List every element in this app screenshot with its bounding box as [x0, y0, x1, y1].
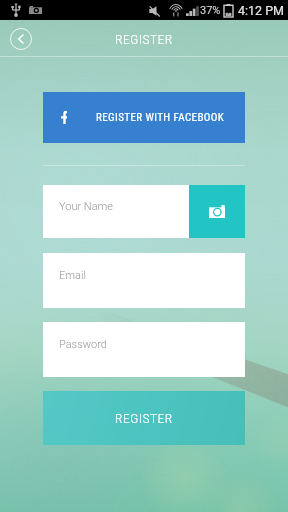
staticText: REGISTER	[115, 410, 173, 426]
button[interactable]: Back	[10, 28, 32, 50]
staticText: Password	[59, 338, 107, 351]
button[interactable]: Your Name	[43, 185, 189, 238]
button[interactable]: Password	[43, 322, 245, 377]
button[interactable]: REGISTER	[43, 391, 245, 445]
button[interactable]: Take photo	[189, 185, 245, 238]
button[interactable]: REGISTER WITH FACEBOOK	[43, 92, 245, 143]
staticText: Email	[59, 269, 86, 282]
staticText: 4:12 PM	[238, 3, 285, 18]
staticText: 37%	[200, 4, 221, 17]
button[interactable]: Email	[43, 253, 245, 308]
staticText: Your Name	[59, 200, 113, 213]
staticText: REGISTER	[115, 31, 173, 47]
staticText: REGISTER WITH FACEBOOK	[96, 111, 225, 124]
